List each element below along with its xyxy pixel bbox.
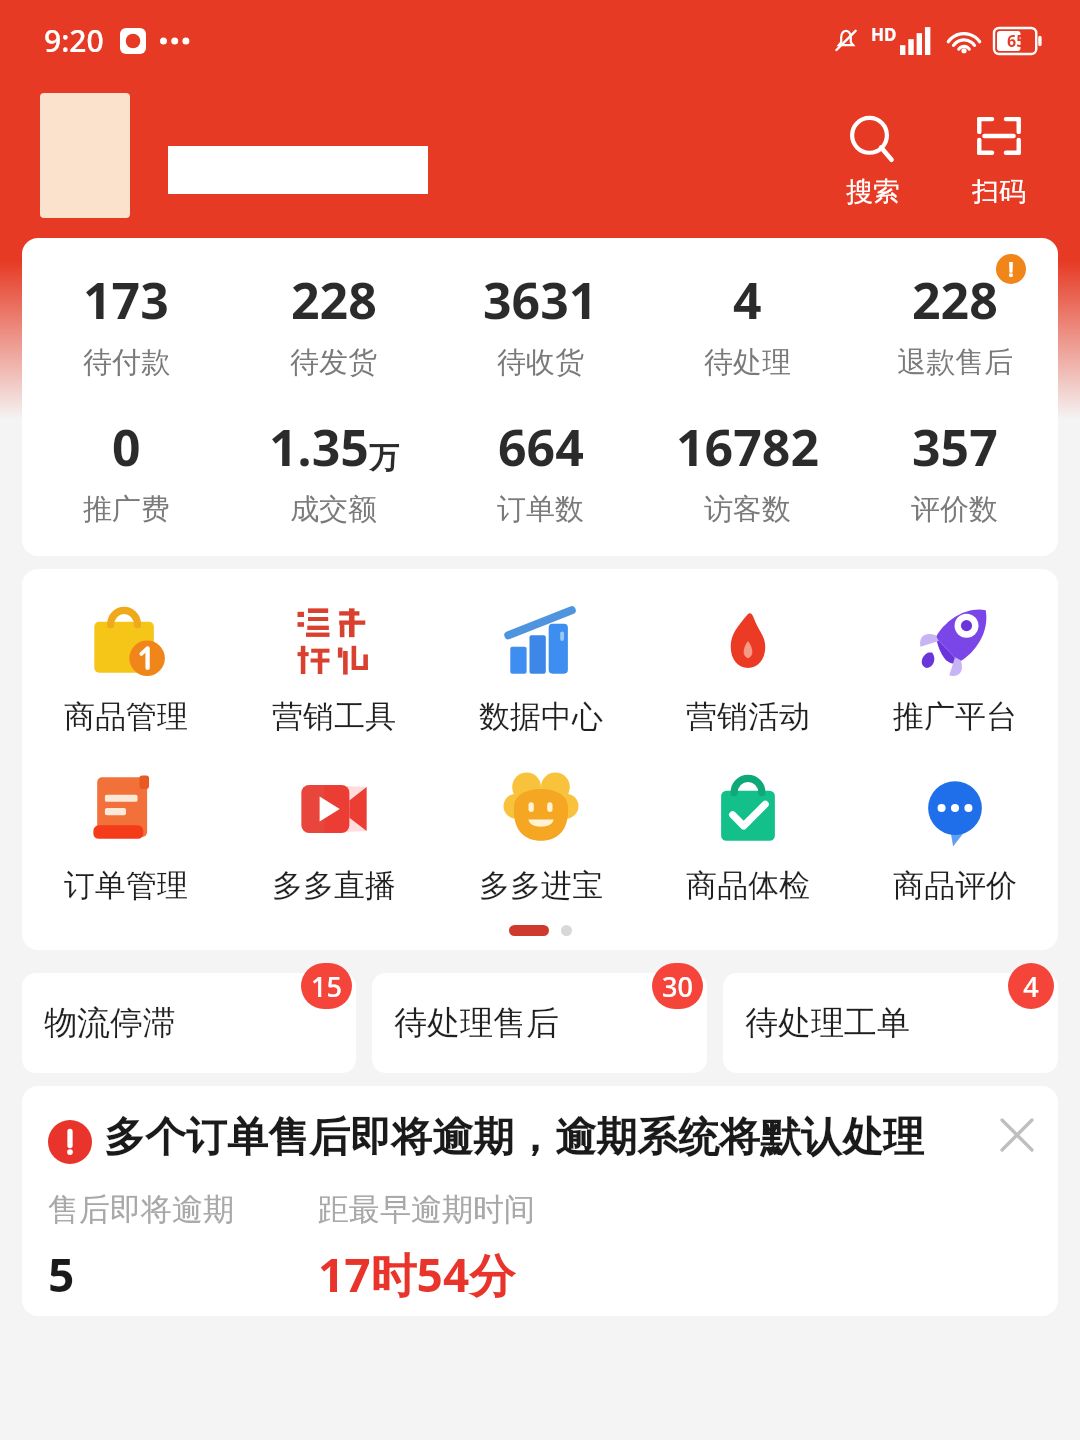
staticText: 营销活动 [686, 697, 810, 736]
staticText: 16782 [676, 413, 819, 481]
staticText: 搜索 [846, 175, 900, 209]
staticText: 228 [291, 266, 377, 334]
button[interactable]: 订单管理 [22, 760, 230, 907]
staticText: 订单数 [497, 491, 584, 528]
staticText: 15 [311, 968, 342, 1005]
button[interactable]: 173 [22, 264, 230, 383]
staticText: 物流停滞 [44, 1002, 176, 1044]
button[interactable]: 228 [230, 264, 437, 383]
staticText: 退款售后 [897, 344, 1013, 381]
button[interactable]: 营销活动 [644, 591, 851, 738]
staticText: 1.35 [269, 413, 369, 481]
button[interactable]: Shop avatar [40, 93, 130, 218]
staticText: 扫码 [972, 175, 1026, 209]
button[interactable]: 商品评价 [851, 760, 1058, 907]
staticText: 数据中心 [479, 697, 603, 736]
staticText: 30 [662, 968, 693, 1005]
staticText: HD [871, 23, 897, 46]
button[interactable]: 物流停滞 [22, 973, 356, 1073]
staticText: 成交额 [290, 491, 377, 528]
button[interactable]: 3631 [437, 264, 644, 383]
staticText: 17时54分 [318, 1243, 516, 1306]
button[interactable]: 待处理售后 [372, 973, 707, 1073]
button[interactable]: Scan QR code [964, 109, 1034, 211]
staticText: 评价数 [911, 491, 998, 528]
staticText: 商品评价 [893, 866, 1017, 905]
button[interactable]: Search [838, 109, 908, 211]
staticText: 多多进宝 [479, 866, 603, 905]
staticText: 万 [369, 439, 399, 477]
button[interactable]: 营销工具 [230, 591, 437, 738]
staticText: 65 [1007, 30, 1026, 52]
button[interactable]: 商品体检 [644, 760, 851, 907]
staticText: 待处理工单 [745, 1002, 910, 1044]
staticText: 待处理 [704, 344, 791, 381]
staticText: 173 [83, 266, 169, 334]
staticText: 营销工具 [272, 697, 396, 736]
staticText: 0 [112, 413, 141, 481]
button[interactable]: 多多直播 [230, 760, 437, 907]
button[interactable]: 357 [851, 411, 1058, 530]
staticText: 访客数 [704, 491, 791, 528]
button[interactable]: 664 [437, 411, 644, 530]
button[interactable]: 16782 [644, 411, 851, 530]
button[interactable]: 商品管理 [22, 591, 230, 738]
staticText: 推广平台 [893, 697, 1017, 736]
staticText: ! [1008, 255, 1014, 284]
staticText: 待发货 [290, 344, 377, 381]
button[interactable]: 数据中心 [437, 591, 644, 738]
button[interactable]: 1.35 [230, 411, 437, 530]
button[interactable]: Close [994, 1112, 1040, 1158]
staticText: 5 [48, 1243, 75, 1306]
staticText: 推广费 [83, 491, 170, 528]
button[interactable]: 推广平台 [851, 591, 1058, 738]
staticText: 多个订单售后即将逾期，逾期系统将默认处理 [104, 1112, 994, 1164]
staticText: 商品管理 [64, 697, 188, 736]
staticText: 4 [1023, 968, 1039, 1005]
staticText: 商品体检 [686, 866, 810, 905]
staticText: 4 [733, 266, 762, 334]
staticText: 距最早逾期时间 [318, 1190, 535, 1229]
staticText: 多多直播 [272, 866, 396, 905]
staticText: 357 [912, 413, 998, 481]
staticText: 664 [498, 413, 584, 481]
button[interactable]: 0 [22, 411, 230, 530]
button[interactable]: 多多进宝 [437, 760, 644, 907]
staticText: 待处理售后 [394, 1002, 559, 1044]
staticText: 待收货 [497, 344, 584, 381]
button[interactable]: 待处理工单 [723, 973, 1058, 1073]
staticText: 订单管理 [64, 866, 188, 905]
staticText: 待付款 [83, 344, 170, 381]
staticText: 售后即将逾期 [48, 1190, 234, 1229]
staticText: 228 [912, 266, 998, 334]
button[interactable]: 228 [851, 264, 1058, 383]
staticText: 9:20 [44, 20, 104, 61]
button[interactable]: 4 [644, 264, 851, 383]
staticText: 3631 [483, 266, 598, 334]
